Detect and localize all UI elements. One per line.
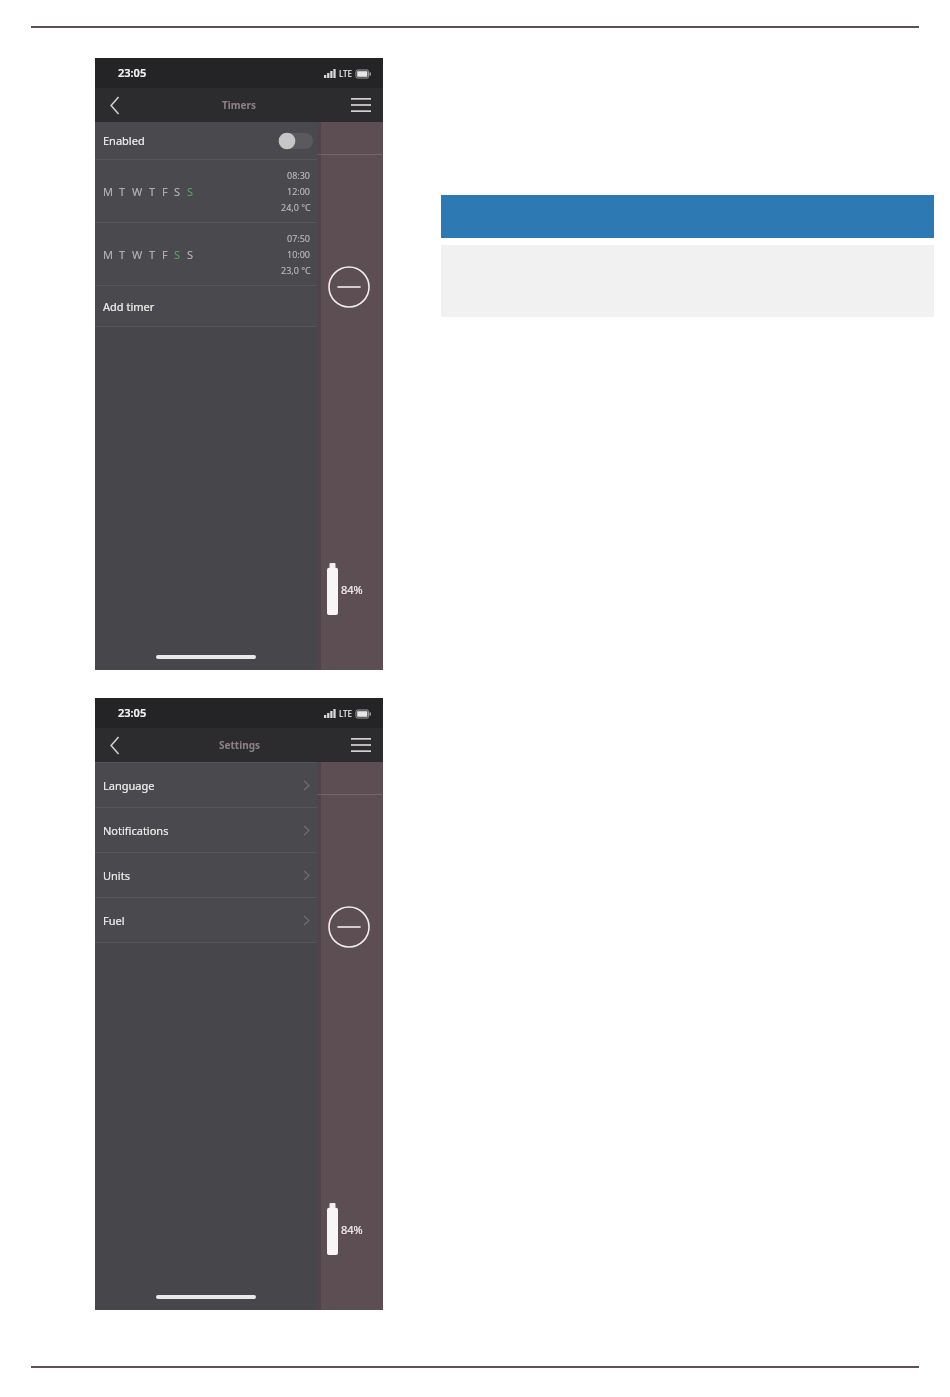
staticText: 84%	[341, 1222, 363, 1237]
button[interactable]: Menu	[339, 728, 383, 762]
staticText: Language	[103, 778, 155, 793]
staticText: 12:00	[287, 185, 311, 197]
button[interactable]: Decrease	[328, 266, 370, 308]
button[interactable]: Add timer	[95, 286, 317, 326]
staticText: 23:05	[118, 705, 147, 720]
button[interactable]: M	[95, 223, 317, 285]
staticText: Notifications	[103, 823, 169, 838]
button[interactable]: Back	[95, 88, 135, 122]
button[interactable]: Notifications	[95, 808, 317, 852]
staticText: 07:50	[287, 232, 311, 244]
staticText: LTE	[339, 68, 353, 79]
staticText: T	[149, 247, 156, 262]
button[interactable]: Back	[95, 728, 135, 762]
staticText: Fuel	[103, 913, 125, 928]
staticText: Add timer	[103, 299, 155, 314]
button[interactable]: Fuel	[95, 898, 317, 942]
staticText: T	[119, 184, 126, 199]
staticText: LTE	[339, 708, 353, 719]
staticText: 84%	[341, 582, 363, 597]
staticText: 24,0 °C	[281, 201, 311, 213]
staticText: S	[174, 184, 181, 199]
staticText: 23,0 °C	[281, 264, 311, 276]
staticText: W	[132, 184, 143, 199]
staticText: T	[119, 247, 126, 262]
button[interactable]: Units	[95, 853, 317, 897]
staticText: 10:00	[287, 248, 311, 260]
button[interactable]: Enabled	[95, 122, 317, 159]
staticText: 08:30	[287, 169, 311, 181]
staticText: Timers	[222, 98, 256, 112]
staticText: F	[162, 184, 168, 199]
staticText: T	[149, 184, 156, 199]
button[interactable]: Language	[95, 763, 317, 807]
button[interactable]: Decrease	[328, 906, 370, 948]
staticText: S	[187, 184, 194, 199]
staticText: Enabled	[103, 133, 145, 148]
button[interactable]: M	[95, 160, 317, 222]
staticText: 23:05	[118, 65, 147, 80]
staticText: M	[103, 247, 113, 262]
staticText: S	[174, 247, 181, 262]
staticText: F	[162, 247, 168, 262]
staticText: M	[103, 184, 113, 199]
staticText: W	[132, 247, 143, 262]
staticText: S	[187, 247, 194, 262]
button[interactable]: Menu	[339, 88, 383, 122]
staticText: Settings	[219, 738, 260, 752]
staticText: Units	[103, 868, 130, 883]
